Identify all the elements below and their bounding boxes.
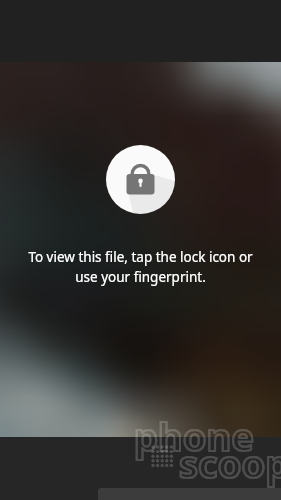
staticText: scoop — [179, 437, 281, 489]
button[interactable]: Unlock file — [106, 145, 175, 214]
staticText: phone — [134, 410, 254, 462]
staticText: To view this file, tap the lock icon or … — [27, 248, 254, 286]
